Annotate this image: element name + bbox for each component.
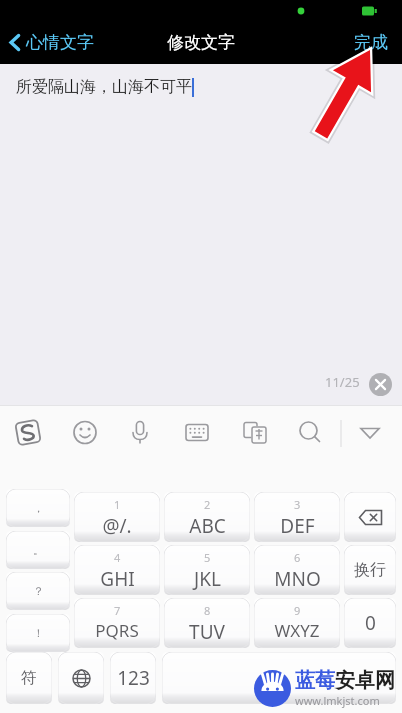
staticText: GHI bbox=[100, 566, 135, 592]
button[interactable]: Space bbox=[162, 652, 396, 704]
staticText: WXYZ bbox=[274, 619, 320, 642]
button[interactable]: ！ bbox=[6, 614, 70, 652]
button[interactable]: Backspace bbox=[344, 492, 396, 542]
staticText: 0 bbox=[365, 610, 376, 636]
button[interactable]: Switch language bbox=[58, 652, 104, 704]
button[interactable]: Translate bbox=[234, 410, 276, 455]
staticText: 。 bbox=[33, 543, 44, 557]
button[interactable]: 。 bbox=[6, 531, 70, 569]
button[interactable]: 符 bbox=[6, 652, 52, 704]
staticText: DEF bbox=[280, 513, 315, 539]
staticText: MNO bbox=[274, 566, 321, 592]
button[interactable]: Emoji bbox=[64, 410, 106, 455]
staticText: 符 bbox=[21, 668, 37, 688]
button[interactable]: 8 bbox=[164, 598, 250, 648]
staticText: 6 bbox=[294, 550, 301, 565]
button[interactable]: 3 bbox=[254, 492, 340, 542]
staticText: 1 bbox=[114, 497, 121, 512]
staticText: ABC bbox=[189, 513, 226, 539]
staticText: JKL bbox=[194, 566, 221, 592]
staticText: @/. bbox=[102, 513, 132, 539]
staticText: 蓝莓 bbox=[295, 668, 335, 693]
button[interactable]: Hide keyboard bbox=[349, 410, 391, 455]
staticText: 4 bbox=[114, 550, 121, 565]
staticText: 完成 bbox=[354, 32, 388, 53]
staticText: 安卓网 bbox=[335, 668, 395, 693]
staticText: www.lmkjst.com bbox=[295, 693, 380, 708]
button[interactable]: 7 bbox=[74, 598, 160, 648]
button[interactable]: Search bbox=[289, 410, 331, 455]
staticText: 2 bbox=[204, 497, 211, 512]
button[interactable]: Sogou input bbox=[7, 410, 49, 455]
staticText: 心情文字 bbox=[26, 32, 94, 53]
staticText: ？ bbox=[33, 584, 44, 598]
staticText: 3 bbox=[294, 497, 301, 512]
button[interactable]: 2 bbox=[164, 492, 250, 542]
button[interactable]: 换行 bbox=[344, 545, 396, 595]
button[interactable]: 心情文字 bbox=[0, 25, 106, 60]
staticText: PQRS bbox=[95, 619, 139, 642]
staticText: 5 bbox=[204, 550, 211, 565]
button[interactable]: 完成 bbox=[338, 24, 402, 61]
button[interactable]: Keyboard layout bbox=[176, 410, 218, 455]
staticText: 11/25 bbox=[325, 373, 360, 391]
staticText: ， bbox=[33, 501, 44, 515]
button[interactable]: 0 bbox=[344, 598, 396, 648]
staticText: 所爱隔山海，山海不可平 bbox=[16, 77, 192, 97]
button[interactable]: 所爱隔山海，山海不可平 bbox=[0, 64, 402, 405]
button[interactable]: 123 bbox=[110, 652, 156, 704]
button[interactable]: Voice input bbox=[119, 410, 161, 455]
staticText: 换行 bbox=[354, 560, 386, 580]
button[interactable]: 6 bbox=[254, 545, 340, 595]
staticText: 8 bbox=[204, 603, 211, 618]
staticText: 7 bbox=[114, 603, 121, 618]
button[interactable]: ， bbox=[6, 489, 70, 527]
button[interactable]: 5 bbox=[164, 545, 250, 595]
staticText: ！ bbox=[33, 626, 44, 640]
staticText: 9 bbox=[294, 603, 301, 618]
staticText: TUV bbox=[189, 619, 225, 645]
button[interactable]: ？ bbox=[6, 572, 70, 610]
button[interactable]: 9 bbox=[254, 598, 340, 648]
button[interactable]: 4 bbox=[74, 545, 160, 595]
staticText: 123 bbox=[117, 665, 150, 691]
button[interactable]: Clear text bbox=[369, 373, 392, 396]
button[interactable]: 1 bbox=[74, 492, 160, 542]
staticText: 修改文字 bbox=[167, 32, 235, 53]
